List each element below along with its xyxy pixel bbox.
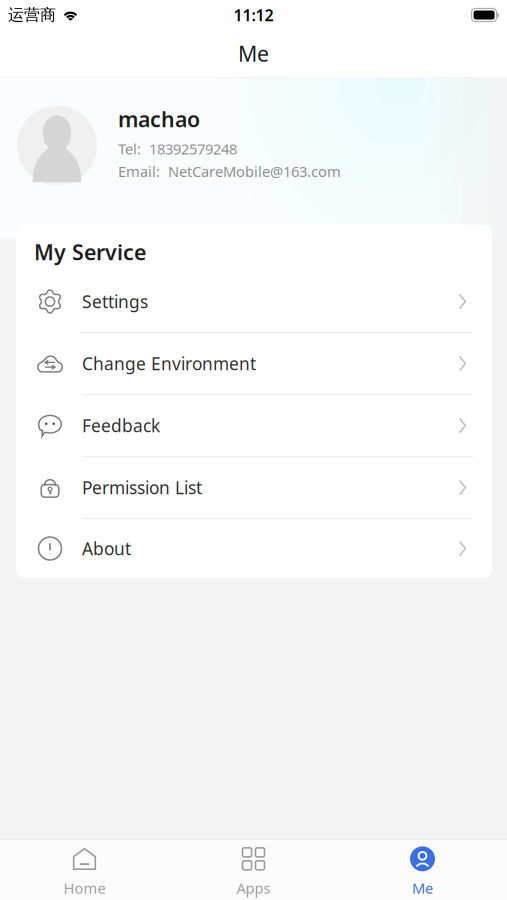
button[interactable]: Home bbox=[0, 839, 169, 900]
button[interactable]: Change Environment bbox=[16, 333, 492, 395]
staticText: Apps bbox=[236, 878, 270, 898]
staticText: Email: NetCareMobile@163.com bbox=[118, 161, 341, 181]
staticText: My Service bbox=[34, 238, 146, 266]
staticText: machao bbox=[118, 105, 200, 133]
button[interactable]: Permission List bbox=[16, 457, 492, 519]
button[interactable]: About bbox=[16, 519, 492, 578]
staticText: Home bbox=[63, 878, 105, 898]
staticText: Permission List bbox=[82, 476, 202, 499]
staticText: 11:12 bbox=[233, 4, 273, 26]
staticText: Change Environment bbox=[82, 352, 256, 375]
staticText: Settings bbox=[82, 290, 148, 313]
staticText: 运营商 bbox=[8, 5, 56, 25]
button[interactable]: Settings bbox=[16, 271, 492, 333]
button[interactable]: Me bbox=[338, 839, 507, 900]
staticText: About bbox=[82, 537, 131, 560]
staticText: Feedback bbox=[82, 414, 160, 437]
staticText: Tel: 18392579248 bbox=[118, 139, 237, 158]
button[interactable]: Apps bbox=[169, 839, 338, 900]
staticText: Me bbox=[412, 878, 433, 898]
button[interactable]: Feedback bbox=[16, 395, 492, 457]
staticText: Me bbox=[238, 39, 269, 68]
